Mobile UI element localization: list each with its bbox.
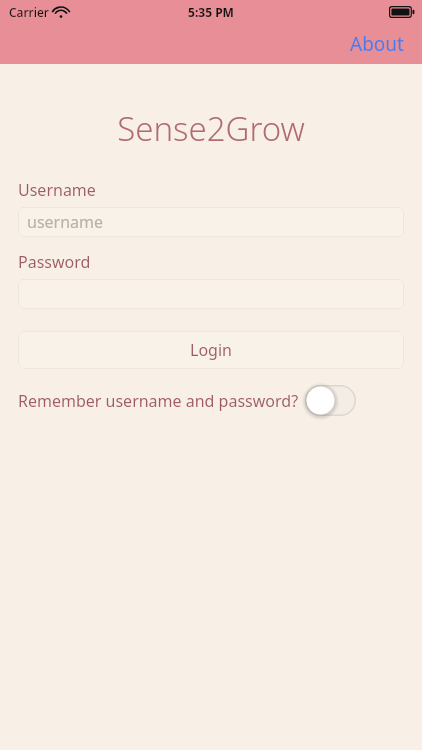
- staticText: Login: [190, 339, 232, 361]
- button[interactable]: Remember username and password?: [18, 385, 404, 416]
- staticText: Username: [18, 179, 96, 201]
- staticText: Sense2Grow: [0, 106, 422, 151]
- staticText: username: [27, 211, 104, 233]
- staticText: Password: [18, 251, 91, 273]
- staticText: Carrier: [9, 4, 49, 20]
- staticText: Remember username and password?: [18, 390, 299, 412]
- button[interactable]: About: [344, 29, 410, 59]
- button[interactable]: username: [18, 207, 404, 237]
- button[interactable]: Remember username and password toggle: [305, 385, 356, 416]
- button[interactable]: Login: [18, 331, 404, 369]
- staticText: 5:35 PM: [188, 4, 234, 20]
- button[interactable]: [18, 279, 404, 309]
- staticText: About: [350, 31, 404, 57]
